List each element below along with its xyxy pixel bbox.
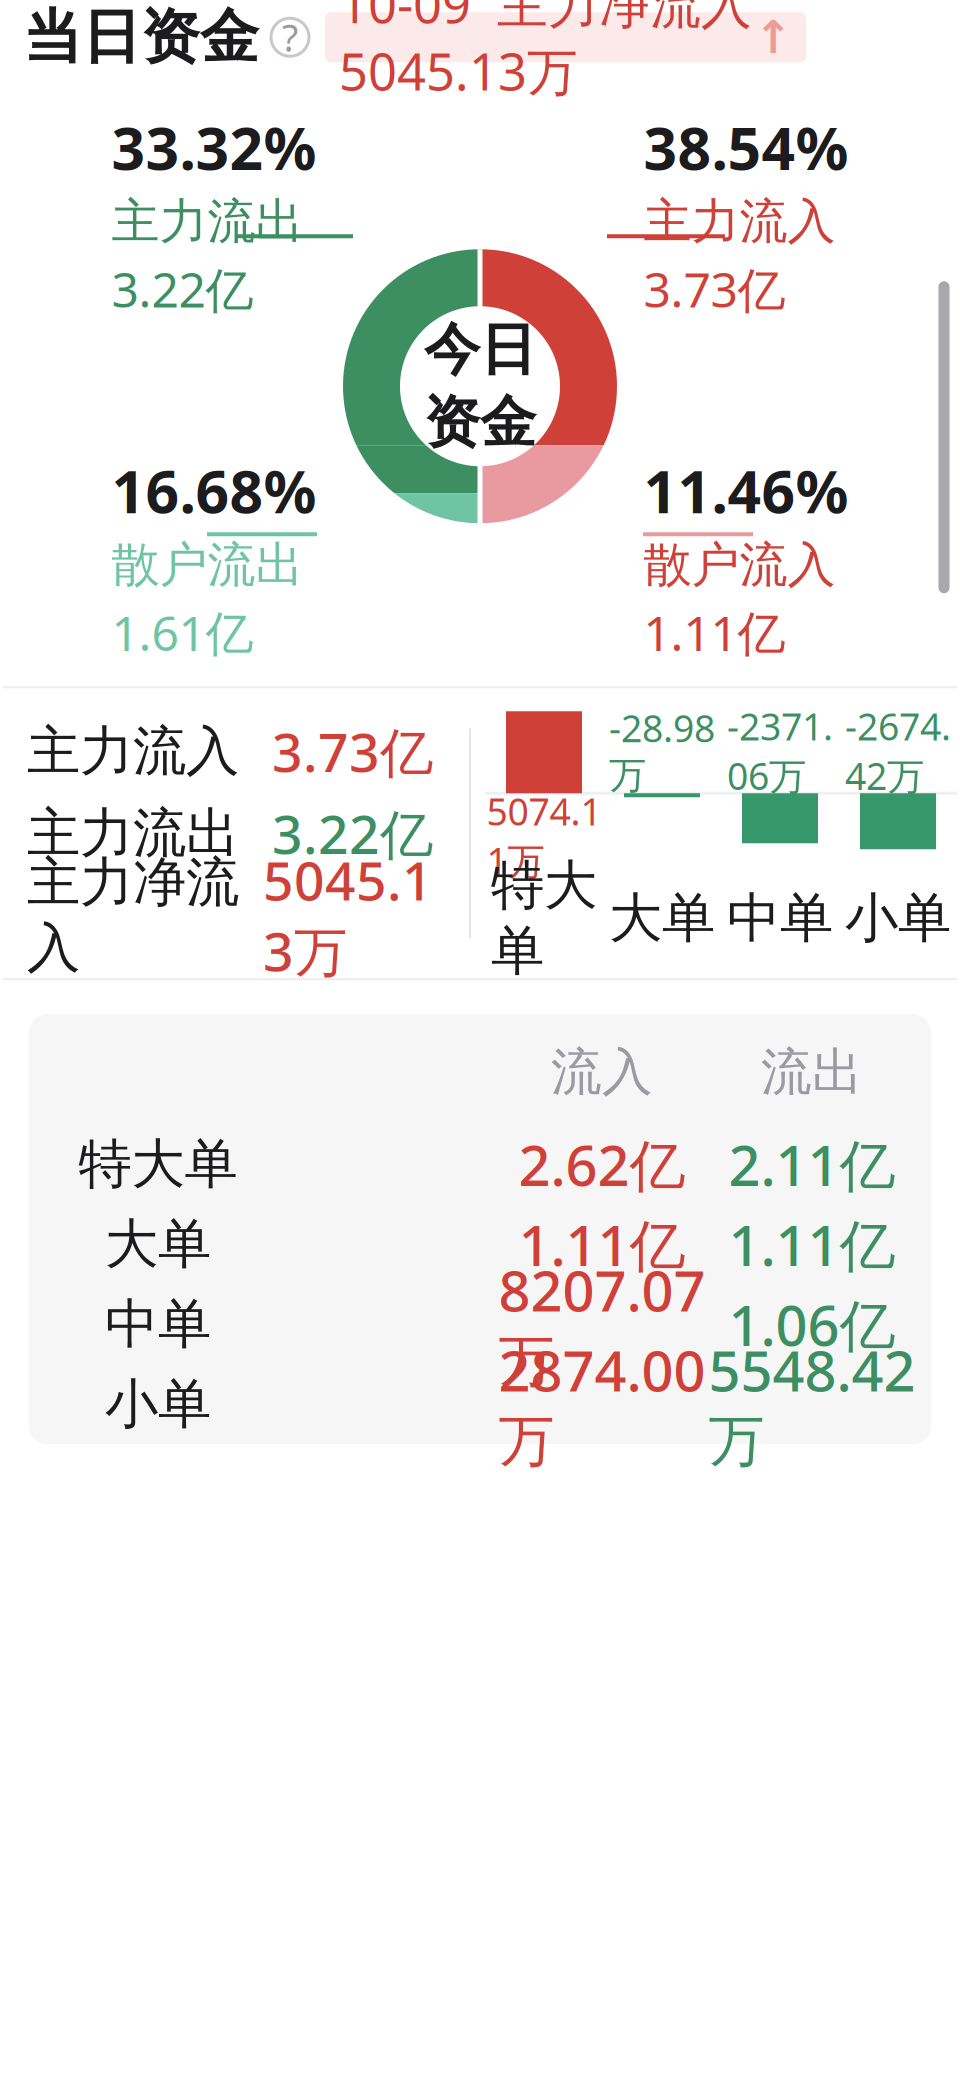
staticText: ↑: [754, 11, 792, 63]
staticText: -2674.42万: [845, 701, 951, 800]
staticText: ?: [282, 12, 298, 62]
staticText: 3.22亿: [272, 798, 433, 869]
staticText: 8207.07万: [498, 1253, 705, 1396]
staticText: 5074.11万: [486, 786, 601, 885]
staticText: 资金: [424, 388, 536, 457]
staticText: 38.54%: [643, 108, 848, 186]
staticText: 主力流入: [643, 192, 835, 251]
staticText: 2.62亿: [518, 1127, 685, 1201]
staticText: 中单: [727, 885, 833, 951]
staticText: 1.11亿: [643, 600, 785, 664]
staticText: -28.98万: [609, 703, 715, 798]
staticText: 小单: [845, 885, 951, 951]
staticText: 5548.42万: [708, 1333, 915, 1476]
staticText: 特大单: [78, 1131, 237, 1197]
staticText: 5045.13万: [263, 844, 433, 986]
staticText: 主力净流入: [27, 850, 239, 981]
staticText: 主力流入: [27, 718, 239, 784]
staticText: 主力流出: [27, 800, 239, 866]
button[interactable]: 帮助: [271, 18, 309, 56]
button[interactable]: 10-09 主力净流入5045.13万: [325, 12, 806, 62]
staticText: 3.22亿: [111, 257, 253, 321]
staticText: 散户流出: [111, 536, 303, 595]
staticText: 1.11亿: [518, 1207, 685, 1281]
staticText: 流入: [551, 1041, 653, 1103]
staticText: 1.06亿: [728, 1287, 895, 1361]
staticText: 当日资金: [23, 1, 259, 73]
staticText: 16.68%: [111, 452, 316, 529]
staticText: 1.11亿: [728, 1207, 895, 1281]
staticText: 2.11亿: [728, 1127, 895, 1201]
staticText: 1.61亿: [111, 600, 253, 664]
staticText: 3.73亿: [643, 257, 785, 321]
staticText: -2371.06万: [727, 701, 833, 800]
staticText: 今日: [424, 315, 536, 384]
staticText: 流出: [761, 1041, 863, 1103]
staticText: 11.46%: [643, 452, 848, 529]
staticText: 大单: [609, 885, 715, 951]
staticText: 大单: [105, 1211, 211, 1277]
staticText: 33.32%: [111, 108, 316, 186]
staticText: 主力流出: [111, 192, 303, 251]
staticText: 2874.00万: [498, 1333, 705, 1476]
staticText: 3.73亿: [272, 716, 433, 787]
staticText: 10-09 主力净流入5045.13万: [339, 0, 752, 105]
staticText: 散户流入: [643, 536, 835, 595]
staticText: 中单: [105, 1291, 211, 1357]
staticText: 小单: [105, 1371, 211, 1437]
staticText: 特大单: [491, 853, 597, 984]
